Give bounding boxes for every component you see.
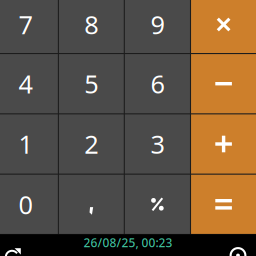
staticText: 3 xyxy=(150,127,164,161)
staticText: 9 xyxy=(150,8,164,41)
staticText: 4 xyxy=(19,67,33,100)
button[interactable]: 9 xyxy=(125,0,190,53)
staticText: 0 xyxy=(19,187,33,221)
staticText: 5 xyxy=(84,67,98,100)
button[interactable] xyxy=(191,54,256,113)
staticText: 6 xyxy=(150,67,164,100)
button[interactable] xyxy=(125,175,190,234)
button[interactable]: Redo xyxy=(0,234,26,256)
button[interactable]: 7 xyxy=(0,0,58,53)
button[interactable]: 6 xyxy=(125,54,190,113)
button[interactable]: 0 xyxy=(0,175,58,234)
button[interactable]: Home xyxy=(220,234,256,256)
button[interactable]: 3 xyxy=(125,114,190,174)
staticText: 1 xyxy=(19,127,33,161)
staticText: 8 xyxy=(84,8,98,41)
button[interactable]: 1 xyxy=(0,114,58,174)
button[interactable] xyxy=(191,0,256,53)
button[interactable]: 8 xyxy=(59,0,124,53)
staticText: 26/08/25, 00:23 xyxy=(83,235,172,251)
button[interactable]: 4 xyxy=(0,54,58,113)
button[interactable] xyxy=(191,114,256,174)
staticText: 7 xyxy=(19,8,33,41)
button[interactable]: 5 xyxy=(59,54,124,113)
button[interactable] xyxy=(59,175,124,234)
button[interactable] xyxy=(191,175,256,234)
staticText: 2 xyxy=(84,127,98,161)
button[interactable]: 2 xyxy=(59,114,124,174)
